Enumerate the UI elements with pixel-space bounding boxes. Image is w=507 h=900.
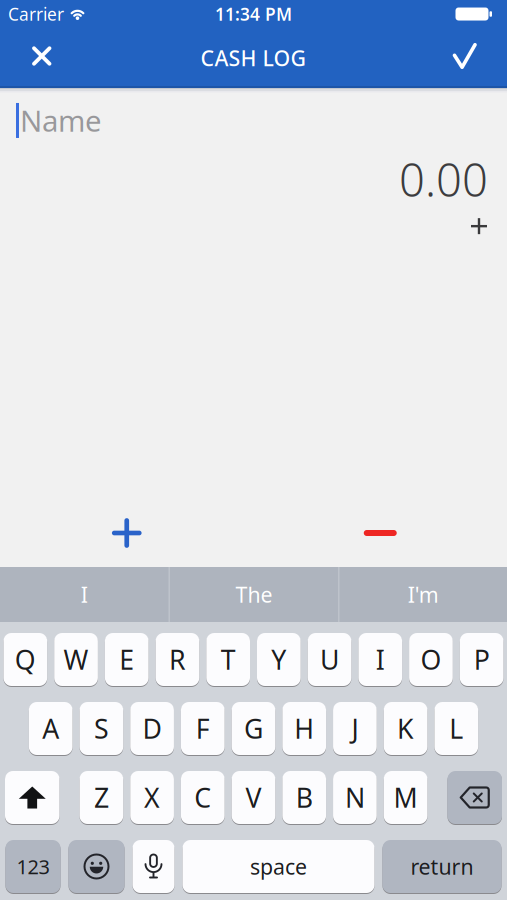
- button[interactable]: P: [460, 633, 503, 686]
- button[interactable]: Dictate: [132, 840, 174, 893]
- button[interactable]: B: [282, 771, 326, 824]
- staticText: 123: [16, 853, 49, 880]
- staticText: X: [144, 780, 160, 815]
- staticText: B: [296, 780, 313, 815]
- staticText: N: [345, 780, 365, 815]
- staticText: E: [119, 642, 134, 677]
- button[interactable]: Emoji: [68, 840, 124, 893]
- staticText: C: [194, 780, 211, 815]
- staticText: M: [394, 780, 418, 815]
- staticText: T: [221, 642, 236, 677]
- staticText: 0.00: [399, 149, 488, 209]
- button[interactable]: Shift: [5, 771, 59, 824]
- button[interactable]: space: [182, 840, 374, 893]
- button[interactable]: D: [130, 702, 174, 755]
- button[interactable]: V: [232, 771, 275, 824]
- button[interactable]: G: [232, 702, 275, 755]
- staticText: O: [420, 642, 441, 677]
- button[interactable]: Q: [3, 633, 47, 686]
- staticText: R: [169, 642, 186, 677]
- button[interactable]: W: [54, 633, 98, 686]
- button[interactable]: C: [181, 771, 225, 824]
- button[interactable]: K: [384, 702, 427, 755]
- staticText: P: [474, 642, 490, 677]
- button[interactable]: L: [434, 702, 478, 755]
- staticText: Q: [15, 642, 36, 677]
- button[interactable]: Save: [434, 31, 507, 81]
- button[interactable]: Name: [0, 88, 507, 140]
- button[interactable]: Expense: [357, 507, 404, 558]
- button[interactable]: T: [206, 633, 250, 686]
- button[interactable]: N: [333, 771, 377, 824]
- staticText: V: [245, 780, 261, 815]
- button[interactable]: F: [181, 702, 225, 755]
- button[interactable]: I: [358, 633, 402, 686]
- button[interactable]: return: [382, 840, 501, 893]
- staticText: Name: [20, 101, 102, 140]
- staticText: A: [42, 711, 59, 746]
- button[interactable]: The: [170, 567, 338, 622]
- staticText: L: [449, 711, 463, 746]
- button[interactable]: I'm: [339, 567, 507, 622]
- staticText: H: [294, 711, 314, 746]
- button[interactable]: I: [0, 567, 168, 622]
- staticText: The: [235, 580, 272, 609]
- button[interactable]: Numbers: [5, 840, 60, 893]
- staticText: U: [320, 642, 339, 677]
- staticText: Y: [271, 642, 286, 677]
- button[interactable]: J: [333, 702, 377, 755]
- button[interactable]: Delete: [447, 771, 502, 824]
- staticText: W: [64, 642, 89, 677]
- staticText: I: [81, 580, 88, 609]
- staticText: Carrier: [8, 2, 64, 25]
- staticText: D: [143, 711, 162, 746]
- button[interactable]: Close: [0, 30, 69, 82]
- button[interactable]: A: [29, 702, 73, 755]
- staticText: F: [196, 711, 210, 746]
- staticText: S: [94, 711, 109, 746]
- staticText: 11:34 PM: [215, 2, 292, 25]
- button[interactable]: R: [156, 633, 199, 686]
- staticText: K: [397, 711, 414, 746]
- button[interactable]: M: [384, 771, 427, 824]
- staticText: CASH LOG: [200, 44, 306, 72]
- staticText: return: [410, 852, 473, 881]
- staticText: I'm: [408, 580, 439, 609]
- button[interactable]: Z: [80, 771, 123, 824]
- button[interactable]: O: [409, 633, 453, 686]
- staticText: space: [250, 852, 307, 881]
- staticText: J: [351, 711, 358, 746]
- staticText: G: [244, 711, 263, 746]
- button[interactable]: 0.00: [0, 140, 507, 209]
- button[interactable]: E: [105, 633, 149, 686]
- button[interactable]: U: [308, 633, 351, 686]
- button[interactable]: Y: [257, 633, 301, 686]
- staticText: Z: [94, 780, 109, 815]
- button[interactable]: Add amount: [465, 212, 493, 240]
- button[interactable]: S: [80, 702, 123, 755]
- staticText: I: [376, 642, 385, 677]
- button[interactable]: Income: [104, 510, 149, 555]
- button[interactable]: X: [130, 771, 174, 824]
- button[interactable]: H: [282, 702, 326, 755]
